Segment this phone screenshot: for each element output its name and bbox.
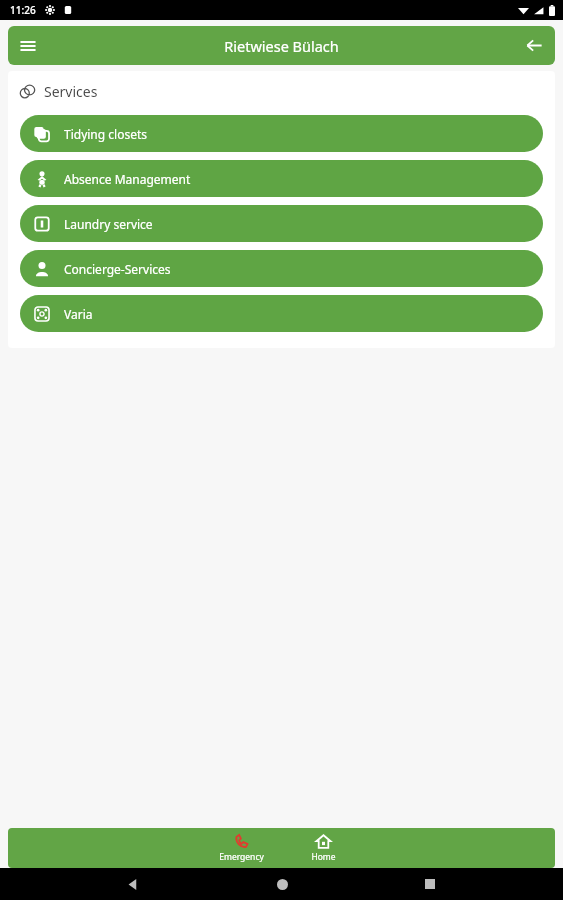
button[interactable]: Recents [415,869,445,899]
button[interactable]: Back [118,869,148,899]
staticText: Services [44,82,98,101]
staticText: Concierge-Services [64,261,171,277]
staticText: Emergency [219,851,264,863]
staticText: 11:26 [10,3,36,17]
staticText: Varia [64,306,93,322]
button[interactable]: Concierge-Services [20,250,543,287]
button[interactable]: Menu [8,26,48,65]
button[interactable]: Absence Management [20,160,543,197]
button[interactable]: Emergency [212,831,270,866]
button[interactable]: Varia [20,295,543,332]
staticText: Absence Management [64,171,191,187]
button[interactable]: Tidying closets [20,115,543,152]
staticText: Home [311,851,336,863]
button[interactable]: Laundry service [20,205,543,242]
staticText: Tidying closets [64,126,147,142]
button[interactable]: Home [267,869,297,899]
staticText: Laundry service [64,216,153,232]
button[interactable]: Back [513,26,555,65]
button[interactable]: Home [294,831,352,866]
staticText: Rietwiese Bülach [224,36,339,56]
